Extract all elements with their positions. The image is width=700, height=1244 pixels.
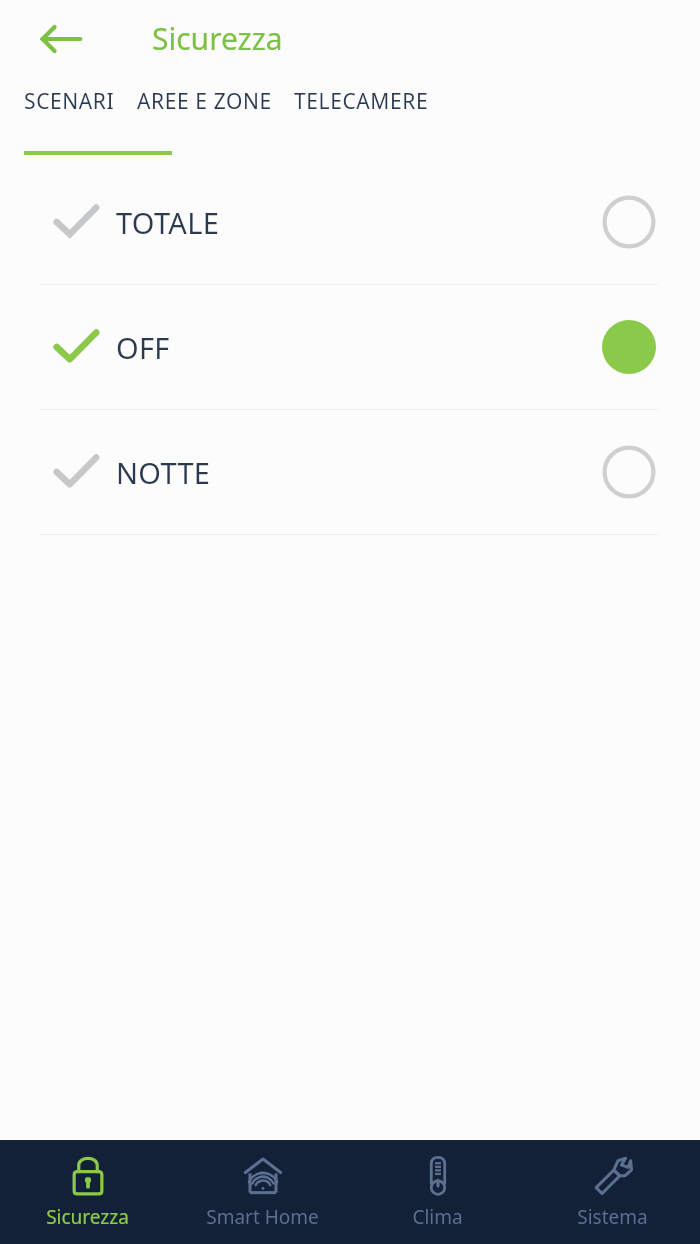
- staticText: TOTALE: [116, 203, 220, 242]
- staticText: TELECAMERE: [294, 87, 429, 116]
- button[interactable]: Toggle OFF: [602, 320, 656, 374]
- button[interactable]: SCENARI: [24, 77, 115, 126]
- staticText: Sicurezza: [46, 1204, 129, 1230]
- staticText: Clima: [412, 1204, 463, 1230]
- button[interactable]: TOTALE: [0, 160, 700, 284]
- button[interactable]: TELECAMERE: [294, 77, 429, 126]
- button[interactable]: Back: [38, 16, 84, 62]
- staticText: SCENARI: [24, 87, 115, 116]
- button[interactable]: Sicurezza: [0, 1140, 175, 1244]
- staticText: AREE E ZONE: [137, 87, 272, 116]
- staticText: Sistema: [577, 1204, 648, 1230]
- button[interactable]: NOTTE: [0, 410, 700, 534]
- staticText: OFF: [116, 328, 170, 367]
- staticText: Smart Home: [206, 1204, 319, 1230]
- button[interactable]: Toggle TOTALE: [602, 195, 656, 249]
- button[interactable]: OFF: [0, 285, 700, 409]
- staticText: NOTTE: [116, 453, 211, 492]
- button[interactable]: Clima: [350, 1140, 525, 1244]
- staticText: Sicurezza: [152, 18, 283, 59]
- button[interactable]: Sistema: [525, 1140, 700, 1244]
- button[interactable]: Smart Home: [175, 1140, 350, 1244]
- button[interactable]: AREE E ZONE: [137, 77, 272, 126]
- button[interactable]: Toggle NOTTE: [602, 445, 656, 499]
